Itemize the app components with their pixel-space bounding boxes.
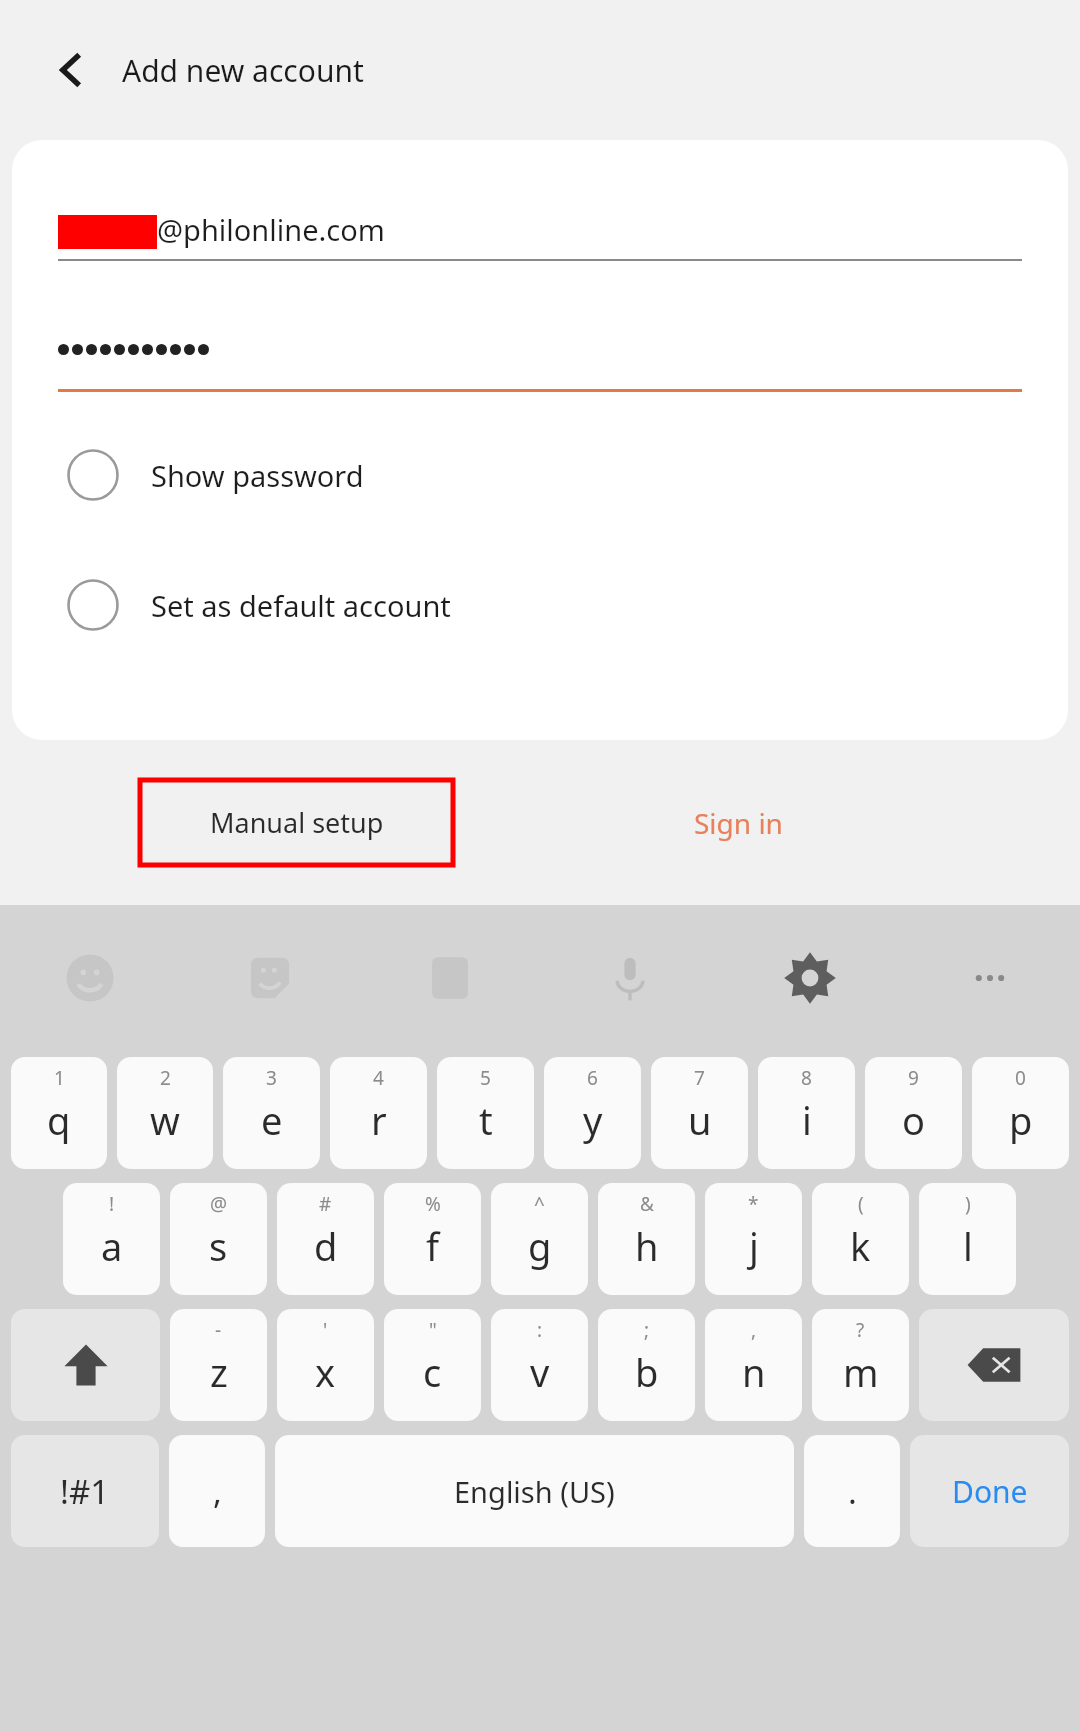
staticText: 6 — [587, 1065, 598, 1091]
staticText: l — [963, 1220, 973, 1272]
staticText: Add new account — [122, 50, 364, 91]
button[interactable]: # — [277, 1183, 374, 1295]
button[interactable]: Keyboard settings — [720, 905, 900, 1050]
staticText: a — [101, 1220, 123, 1272]
staticText: h — [635, 1220, 659, 1272]
button[interactable]: " — [384, 1309, 481, 1421]
staticText: e — [261, 1094, 283, 1146]
staticText: x — [315, 1346, 336, 1398]
staticText: Done — [952, 1471, 1028, 1512]
button[interactable]: . — [804, 1435, 900, 1547]
button[interactable]: Show password — [12, 440, 1068, 510]
button[interactable]: Emoji — [0, 905, 180, 1050]
staticText: o — [902, 1094, 925, 1146]
staticText: 5 — [480, 1065, 491, 1091]
staticText: y — [583, 1094, 603, 1146]
staticText: Set as default account — [151, 586, 451, 625]
staticText: ? — [856, 1317, 865, 1343]
button[interactable]: Done — [910, 1435, 1069, 1547]
button[interactable]: More options — [900, 905, 1080, 1050]
button[interactable]: 9 — [865, 1057, 962, 1169]
staticText: q — [47, 1094, 71, 1146]
button[interactable]: English (US) — [275, 1435, 794, 1547]
staticText: g — [528, 1220, 552, 1272]
button[interactable]: @ — [170, 1183, 267, 1295]
staticText: , — [751, 1317, 757, 1343]
staticText: 2 — [160, 1065, 171, 1091]
button[interactable]: 7 — [651, 1057, 748, 1169]
staticText: 3 — [266, 1065, 277, 1091]
staticText: & — [640, 1191, 654, 1217]
staticText: ) — [965, 1191, 971, 1217]
staticText: k — [850, 1220, 871, 1272]
staticText: !#1 — [60, 1469, 110, 1514]
staticText: 9 — [908, 1065, 919, 1091]
button[interactable]: ( — [812, 1183, 909, 1295]
staticText: v — [530, 1346, 550, 1398]
button[interactable]: Shift — [11, 1309, 160, 1421]
button[interactable]: ; — [598, 1309, 695, 1421]
staticText: % — [425, 1191, 441, 1217]
staticText: English (US) — [454, 1472, 615, 1511]
staticText: . — [848, 1469, 857, 1514]
staticText: : — [537, 1317, 543, 1343]
staticText: " — [429, 1317, 437, 1343]
staticText: Manual setup — [210, 804, 384, 841]
button[interactable]: 1 — [11, 1057, 107, 1169]
button[interactable]: !#1 — [11, 1435, 159, 1547]
button[interactable]: - — [170, 1309, 267, 1421]
staticText: * — [748, 1191, 759, 1217]
staticText: ' — [323, 1317, 328, 1343]
staticText: , — [213, 1469, 222, 1514]
button[interactable]: Sign in — [638, 780, 838, 865]
staticText: ! — [109, 1191, 115, 1217]
staticText: n — [742, 1346, 766, 1398]
button[interactable]: Backspace — [919, 1309, 1069, 1421]
button[interactable]: ' — [277, 1309, 374, 1421]
button[interactable]: : — [491, 1309, 588, 1421]
button[interactable]: 3 — [223, 1057, 320, 1169]
staticText: - — [215, 1317, 222, 1343]
button[interactable]: , — [169, 1435, 265, 1547]
button[interactable]: 5 — [437, 1057, 534, 1169]
staticText: j — [749, 1220, 759, 1272]
button[interactable]: ) — [919, 1183, 1016, 1295]
staticText: m — [843, 1346, 879, 1398]
button[interactable]: Set as default account — [12, 570, 1068, 640]
staticText: 1 — [54, 1065, 65, 1091]
button[interactable]: ? — [812, 1309, 909, 1421]
button[interactable]: 0 — [972, 1057, 1069, 1169]
button[interactable]: , — [705, 1309, 802, 1421]
staticText: 0 — [1015, 1065, 1026, 1091]
staticText: c — [423, 1346, 442, 1398]
button[interactable]: % — [384, 1183, 481, 1295]
button[interactable]: 4 — [330, 1057, 427, 1169]
staticText: @philonline.com — [157, 210, 385, 249]
button[interactable]: GIF — [360, 905, 540, 1050]
button[interactable]: 6 — [544, 1057, 641, 1169]
button[interactable]: * — [705, 1183, 802, 1295]
button[interactable]: ^ — [491, 1183, 588, 1295]
staticText: 7 — [694, 1065, 705, 1091]
staticText: t — [479, 1094, 493, 1146]
button[interactable]: Manual setup — [140, 780, 453, 865]
button[interactable]: 8 — [758, 1057, 855, 1169]
staticText: i — [802, 1094, 812, 1146]
button[interactable]: Back — [40, 38, 104, 102]
staticText: 8 — [801, 1065, 812, 1091]
button[interactable]: & — [598, 1183, 695, 1295]
staticText: f — [426, 1220, 440, 1272]
staticText: @ — [210, 1191, 228, 1217]
staticText: Sign in — [694, 804, 783, 842]
staticText: w — [150, 1094, 180, 1146]
staticText: z — [210, 1346, 228, 1398]
staticText: s — [209, 1220, 228, 1272]
staticText: r — [371, 1094, 387, 1146]
button[interactable]: ! — [63, 1183, 160, 1295]
button[interactable]: 2 — [117, 1057, 213, 1169]
staticText: d — [314, 1220, 338, 1272]
staticText: # — [319, 1191, 332, 1217]
staticText: Show password — [151, 456, 364, 495]
